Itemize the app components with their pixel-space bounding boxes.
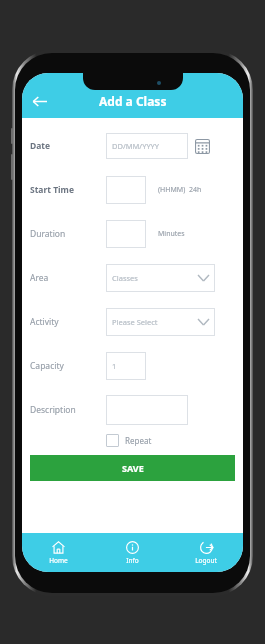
staticText: Start Time — [30, 184, 106, 196]
button[interactable]: Logout — [169, 533, 243, 572]
button[interactable]: Info — [95, 533, 169, 572]
staticText: Area — [30, 272, 106, 284]
staticText: (HHMM) 24h — [158, 185, 202, 195]
button[interactable]: Pick date — [192, 136, 212, 156]
button[interactable]: Back — [22, 84, 56, 118]
button[interactable]: Classes — [106, 264, 215, 292]
staticText: DD/MM/YYYY — [112, 141, 160, 151]
staticText: Classes — [112, 273, 138, 283]
staticText: Home — [49, 556, 68, 565]
staticText: Duration — [30, 228, 106, 240]
button[interactable]: Home — [22, 533, 95, 572]
staticText: Please Select — [112, 317, 158, 327]
staticText: Capacity — [30, 360, 106, 372]
staticText: Minutes — [158, 229, 185, 239]
staticText: Date — [30, 140, 106, 152]
button[interactable]: Repeat — [106, 434, 152, 447]
staticText: Logout — [195, 556, 217, 565]
button[interactable]: Please Select — [106, 308, 215, 336]
staticText: 1 — [112, 361, 117, 371]
staticText: Info — [126, 556, 139, 565]
staticText: Repeat — [125, 435, 152, 446]
staticText: SAVE — [122, 462, 144, 474]
staticText: Add a Class — [99, 93, 167, 109]
button[interactable]: SAVE — [30, 455, 235, 481]
staticText: Activity — [30, 316, 106, 328]
staticText: Description — [30, 404, 106, 416]
